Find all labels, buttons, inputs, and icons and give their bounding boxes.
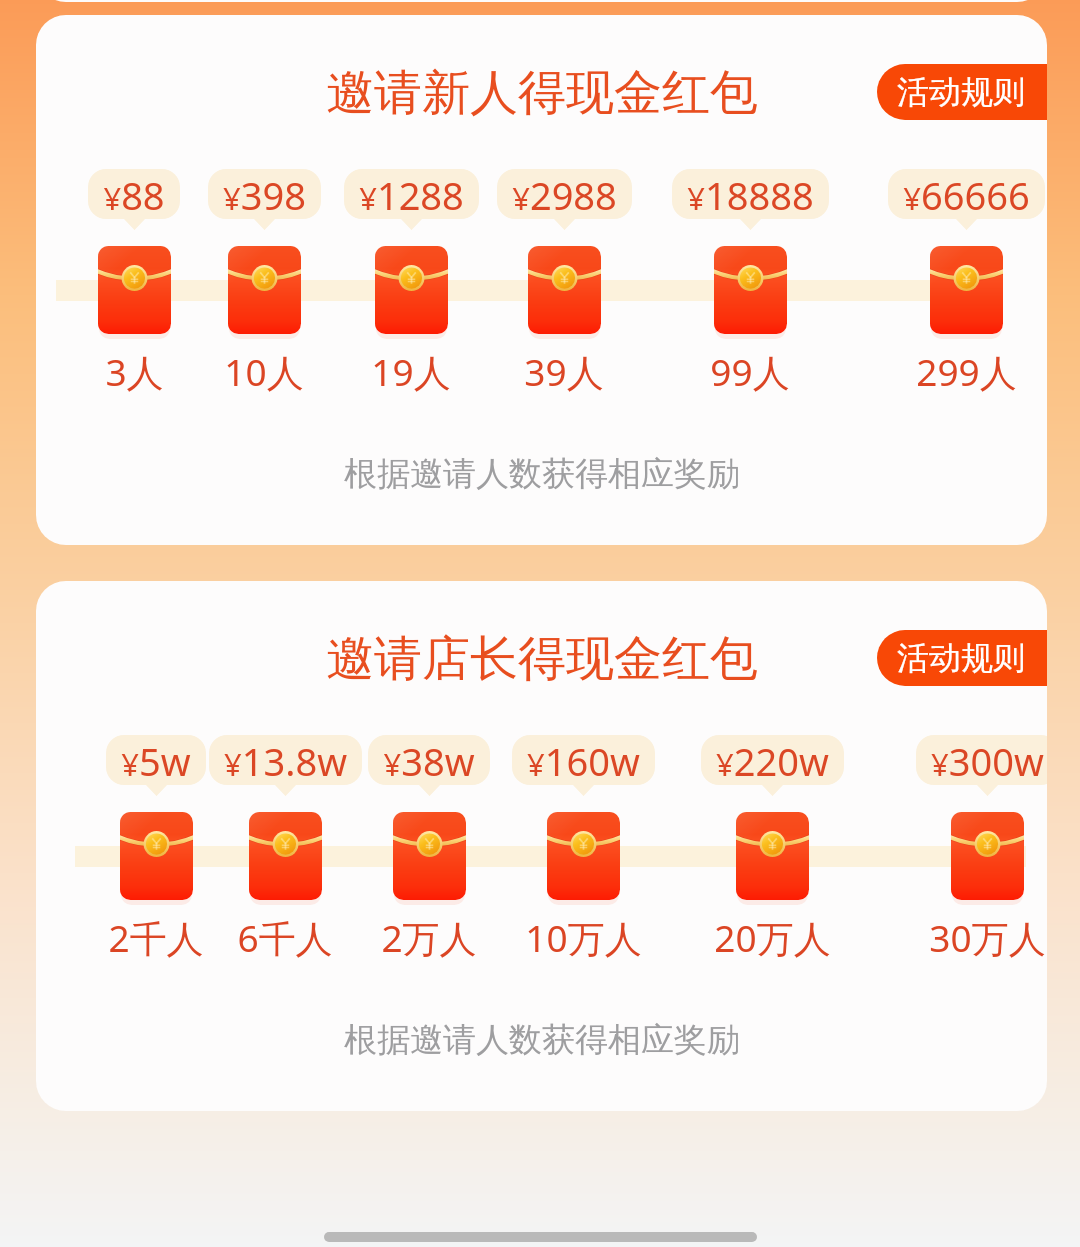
staticText: ¥38w — [383, 735, 475, 785]
staticText: 39人 — [524, 346, 604, 397]
staticText: ¥18888 — [687, 169, 814, 219]
button[interactable]: 活动规则 — [877, 64, 1047, 120]
button[interactable]: ¥5w — [56, 735, 256, 955]
staticText: 活动规则 — [897, 638, 1025, 678]
button[interactable]: ¥18888 — [650, 169, 850, 389]
staticText: 19人 — [371, 346, 451, 397]
button[interactable]: ¥13.8w — [185, 735, 385, 955]
staticText: 2万人 — [381, 912, 477, 963]
staticText: 20万人 — [714, 912, 831, 963]
other: 红包 ¥160w — [547, 812, 620, 900]
staticText: 99人 — [710, 346, 790, 397]
other: 红包 ¥300w — [951, 812, 1024, 900]
other: 红包 ¥38w — [393, 812, 466, 900]
staticText: ¥66666 — [903, 169, 1030, 219]
other: 红包 ¥66666 — [930, 246, 1003, 334]
other: 红包 ¥1288 — [375, 246, 448, 334]
staticText: ¥160w — [527, 735, 640, 785]
button[interactable]: ¥38w — [329, 735, 529, 955]
other: 红包 ¥18888 — [714, 246, 787, 334]
button[interactable]: ¥300w — [887, 735, 1047, 955]
button[interactable]: ¥88 — [36, 169, 234, 389]
button[interactable]: ¥66666 — [866, 169, 1047, 389]
staticText: 6千人 — [237, 912, 333, 963]
staticText: ¥220w — [716, 735, 829, 785]
staticText: 299人 — [916, 346, 1017, 397]
other: 红包 ¥88 — [98, 246, 171, 334]
staticText: 3人 — [105, 346, 164, 397]
staticText: 2千人 — [108, 912, 204, 963]
staticText: ¥5w — [121, 735, 191, 785]
staticText: ¥2988 — [512, 169, 617, 219]
staticText: 根据邀请人数获得相应奖励 — [344, 453, 740, 495]
staticText: ¥13.8w — [224, 735, 347, 785]
staticText: ¥1288 — [359, 169, 464, 219]
button[interactable]: ¥160w — [483, 735, 683, 955]
staticText: 邀请店长得现金红包 — [326, 629, 758, 689]
staticText: ¥300w — [931, 735, 1044, 785]
staticText: 10人 — [224, 346, 304, 397]
button[interactable]: ¥2988 — [464, 169, 664, 389]
other: 红包 ¥398 — [228, 246, 301, 334]
other: 红包 ¥5w — [120, 812, 193, 900]
other: 红包 ¥13.8w — [249, 812, 322, 900]
staticText: 根据邀请人数获得相应奖励 — [344, 1019, 740, 1061]
button[interactable]: ¥220w — [672, 735, 872, 955]
staticText: ¥88 — [103, 169, 165, 219]
staticText: 10万人 — [525, 912, 642, 963]
staticText: 30万人 — [929, 912, 1046, 963]
button[interactable]: ¥1288 — [311, 169, 511, 389]
staticText: ¥398 — [223, 169, 306, 219]
button[interactable]: 活动规则 — [877, 630, 1047, 686]
other: 红包 ¥2988 — [528, 246, 601, 334]
staticText: 邀请新人得现金红包 — [326, 63, 758, 123]
staticText: 活动规则 — [897, 72, 1025, 112]
button[interactable]: ¥398 — [164, 169, 364, 389]
other: 红包 ¥220w — [736, 812, 809, 900]
